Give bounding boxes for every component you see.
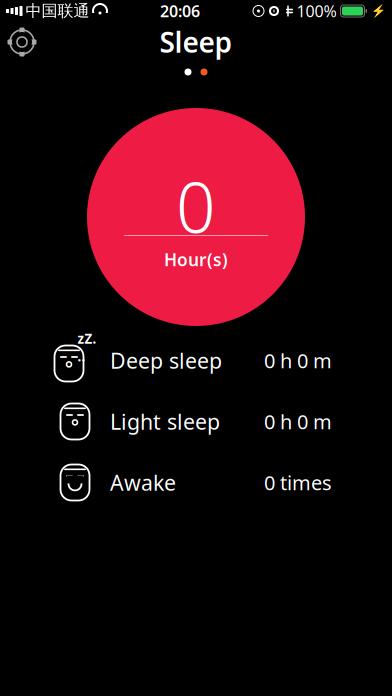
staticText: ⚡ xyxy=(371,4,386,18)
staticText: 100% xyxy=(296,0,336,22)
staticText: 中国联通 xyxy=(25,1,89,21)
staticText: zZ... xyxy=(77,330,96,365)
staticText: 0 h 0 m xyxy=(264,408,332,435)
staticText: 20:06 xyxy=(160,0,200,22)
staticText: Awake xyxy=(110,468,176,497)
button[interactable]: Settings xyxy=(0,22,44,62)
button[interactable]: Awake xyxy=(0,452,392,513)
button[interactable]: Light sleep xyxy=(0,391,392,452)
staticText: 0 xyxy=(176,160,216,252)
staticText: 0 h 0 m xyxy=(264,347,332,374)
button[interactable]: zZ... xyxy=(0,330,392,391)
staticText: Sleep xyxy=(159,23,232,61)
staticText: 0 times xyxy=(264,469,332,496)
staticText: Deep sleep xyxy=(110,346,222,375)
staticText: Light sleep xyxy=(110,407,220,436)
staticText: Hour(s) xyxy=(164,248,228,271)
